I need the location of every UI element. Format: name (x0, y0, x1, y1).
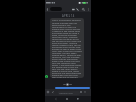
staticText: APRIL 14 (62, 14, 75, 18)
button[interactable]: Recents (75, 96, 81, 102)
button[interactable]: Camera (79, 90, 83, 94)
button[interactable]: More options (86, 7, 91, 12)
button[interactable]: Sender avatar (45, 75, 48, 78)
staticText: This is a completely harmless sample mes… (52, 19, 82, 78)
button[interactable]: This is a completely harmless sample mes… (50, 18, 84, 78)
button[interactable]: Search (81, 7, 86, 12)
button[interactable]: Back (45, 7, 50, 12)
staticText: Message here (59, 92, 73, 95)
button[interactable]: Attach (51, 90, 55, 94)
button[interactable]: Message here (59, 91, 80, 95)
button[interactable]: Call (75, 7, 80, 12)
button[interactable]: Seek bar (55, 87, 90, 89)
button[interactable]: Voice message (83, 90, 87, 94)
button[interactable]: Back (53, 96, 59, 102)
button[interactable]: Contact name (50, 7, 62, 11)
button[interactable]: Emoji (46, 90, 50, 94)
button[interactable]: Video call (71, 7, 76, 12)
button[interactable]: Home (64, 96, 70, 102)
button[interactable]: Playback position (63, 83, 72, 86)
